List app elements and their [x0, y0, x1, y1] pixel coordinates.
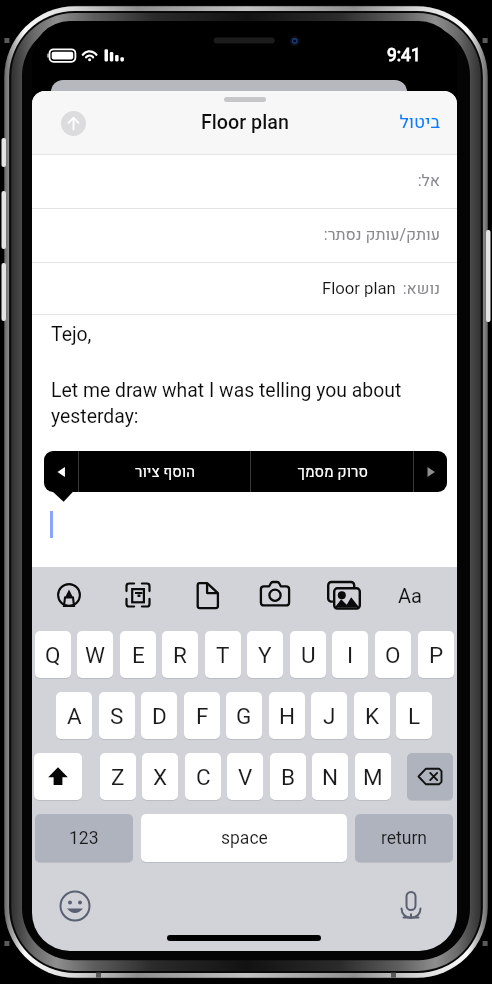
button[interactable]: B [270, 753, 306, 800]
button[interactable]: Next [414, 451, 447, 492]
staticText: Z [111, 764, 125, 790]
button[interactable]: J [311, 692, 347, 739]
staticText: סרוק מסמך [297, 461, 368, 483]
staticText: עותק/עותק נסתר: [323, 223, 440, 247]
staticText: Floor plan [322, 279, 396, 299]
button[interactable]: Photo library [320, 571, 368, 619]
button[interactable]: Shift [34, 753, 82, 800]
staticText: נושא: [402, 277, 440, 301]
staticText: M [363, 764, 383, 790]
staticText: C [196, 764, 211, 790]
button[interactable]: T [205, 631, 241, 678]
staticText: return [381, 828, 428, 849]
staticText: 123 [69, 828, 99, 849]
button[interactable]: O [375, 631, 411, 678]
button[interactable]: 123 [35, 814, 133, 862]
button[interactable]: Attach file [183, 571, 231, 619]
staticText: I [347, 642, 354, 668]
staticText: Let me draw what I was telling you about [51, 379, 402, 402]
button[interactable]: אל: [32, 154, 457, 208]
button[interactable]: E [120, 631, 156, 678]
staticText: U [301, 642, 316, 668]
staticText: space [221, 828, 268, 849]
button[interactable]: A [56, 692, 92, 739]
staticText: B [281, 764, 296, 790]
button[interactable]: Backspace [407, 753, 453, 800]
button[interactable]: D [141, 692, 177, 739]
staticText: A [67, 703, 82, 729]
button[interactable]: G [226, 692, 262, 739]
staticText: T [216, 642, 230, 668]
button[interactable]: space [141, 814, 347, 862]
staticText: Aa [398, 584, 422, 607]
staticText: J [323, 703, 336, 729]
staticText: P [429, 642, 444, 668]
staticText: W [85, 642, 105, 668]
button[interactable]: H [269, 692, 305, 739]
button[interactable]: U [290, 631, 326, 678]
button[interactable]: F [184, 692, 220, 739]
button[interactable]: עותק/עותק נסתר: [32, 208, 457, 262]
staticText: K [365, 703, 380, 729]
staticText: O [385, 642, 401, 668]
staticText: F [196, 703, 209, 729]
staticText: אל: [417, 169, 440, 193]
button[interactable]: Floor plan [32, 262, 457, 316]
button[interactable]: Dictation [391, 884, 431, 924]
staticText: 9:41 [387, 45, 421, 66]
button[interactable]: Take photo [251, 571, 299, 619]
button[interactable]: V [227, 753, 263, 800]
button[interactable]: C [185, 753, 221, 800]
button[interactable]: Scan document [114, 571, 162, 619]
button[interactable]: P [418, 631, 454, 678]
staticText: X [153, 764, 168, 790]
button[interactable]: R [162, 631, 198, 678]
button[interactable]: Aa [388, 577, 432, 613]
staticText: yesterday: [51, 405, 139, 428]
staticText: Y [258, 642, 272, 668]
staticText: ביטול [399, 109, 440, 135]
staticText: Q [45, 642, 61, 668]
button[interactable]: הוסף ציור [79, 451, 250, 492]
staticText: R [173, 642, 187, 668]
button[interactable]: Send [61, 111, 86, 136]
button[interactable]: Q [35, 631, 71, 678]
staticText: N [322, 764, 339, 790]
staticText: הוסף ציור [135, 461, 195, 483]
button[interactable]: L [396, 692, 432, 739]
button[interactable]: X [142, 753, 178, 800]
button[interactable]: Z [100, 753, 136, 800]
button[interactable]: Previous [44, 451, 78, 492]
button[interactable]: S [99, 692, 135, 739]
staticText: D [152, 703, 167, 729]
staticText: Tejo, [51, 323, 92, 346]
button[interactable]: I [332, 631, 368, 678]
button[interactable]: W [77, 631, 113, 678]
staticText: G [236, 703, 252, 729]
staticText: E [132, 642, 145, 668]
button[interactable]: ביטול [392, 104, 446, 140]
button[interactable]: N [312, 753, 348, 800]
staticText: Floor plan [201, 111, 289, 134]
staticText: S [110, 703, 124, 729]
staticText: H [279, 703, 296, 729]
staticText: L [408, 703, 421, 729]
button[interactable]: return [355, 814, 453, 862]
button[interactable]: Emoji [55, 886, 95, 926]
button[interactable]: K [354, 692, 390, 739]
button[interactable]: Y [247, 631, 283, 678]
staticText: V [238, 764, 253, 790]
button[interactable]: M [355, 753, 391, 800]
button[interactable]: Markup [45, 571, 93, 619]
button[interactable]: סרוק מסמך [251, 451, 413, 492]
